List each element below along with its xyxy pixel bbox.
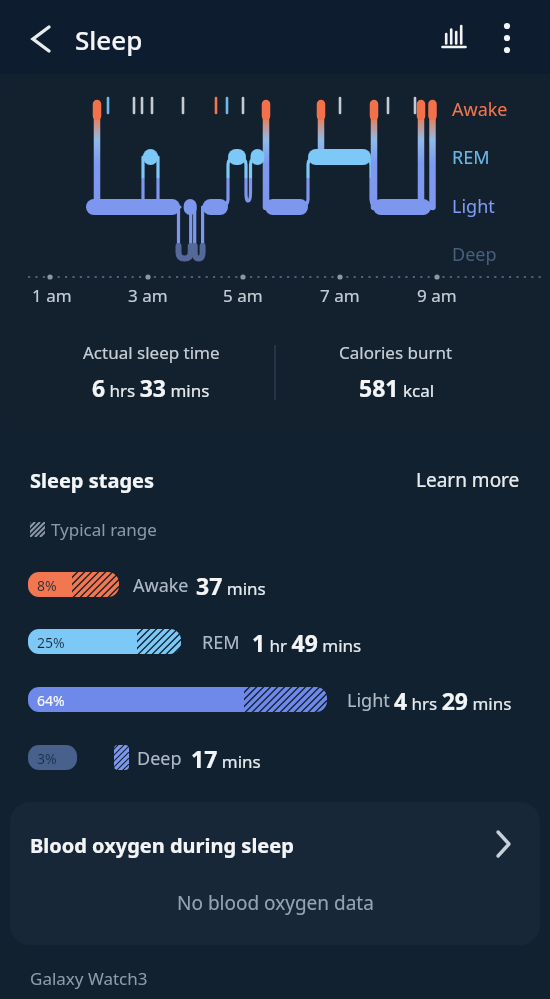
staticText: Awake bbox=[133, 573, 189, 598]
staticText: REM bbox=[452, 145, 490, 170]
staticText: REM bbox=[202, 630, 240, 655]
staticText: 8% bbox=[37, 576, 57, 595]
button[interactable] bbox=[0, 745, 400, 771]
button[interactable] bbox=[20, 20, 60, 60]
staticText: Deep bbox=[137, 746, 182, 771]
staticText: 25% bbox=[37, 633, 65, 652]
staticText: 581 kcal bbox=[359, 372, 435, 403]
staticText: Learn more bbox=[416, 467, 520, 493]
staticText: Light bbox=[347, 688, 390, 713]
staticText: Actual sleep time bbox=[83, 341, 220, 364]
staticText: 17 mins bbox=[191, 743, 261, 774]
staticText: Calories burnt bbox=[339, 341, 453, 364]
staticText: 7 am bbox=[320, 284, 360, 307]
staticText: 3% bbox=[37, 749, 57, 768]
staticText: 1 hr 49 mins bbox=[252, 627, 362, 658]
staticText: Deep bbox=[452, 242, 497, 267]
staticText: Typical range bbox=[51, 518, 157, 541]
staticText: 5 am bbox=[223, 284, 263, 307]
staticText: 4 hrs 29 mins bbox=[394, 685, 512, 716]
staticText: 3 am bbox=[128, 284, 168, 307]
staticText: Sleep stages bbox=[30, 467, 155, 494]
button[interactable] bbox=[434, 16, 478, 60]
button[interactable] bbox=[0, 629, 400, 655]
staticText: Sleep bbox=[75, 22, 143, 57]
staticText: 9 am bbox=[417, 284, 457, 307]
button[interactable] bbox=[0, 687, 400, 713]
staticText: Awake bbox=[452, 97, 508, 122]
staticText: 1 am bbox=[32, 284, 72, 307]
staticText: Light bbox=[452, 194, 495, 219]
staticText: No blood oxygen data bbox=[177, 890, 374, 916]
button[interactable] bbox=[489, 16, 529, 60]
button[interactable] bbox=[10, 802, 540, 945]
staticText: 37 mins bbox=[196, 570, 266, 601]
button[interactable]: Learn more bbox=[400, 460, 520, 500]
staticText: Blood oxygen during sleep bbox=[30, 832, 294, 859]
button[interactable] bbox=[0, 572, 400, 598]
staticText: Galaxy Watch3 bbox=[30, 967, 148, 990]
staticText: 64% bbox=[37, 691, 65, 710]
staticText: 6 hrs 33 mins bbox=[92, 372, 210, 403]
